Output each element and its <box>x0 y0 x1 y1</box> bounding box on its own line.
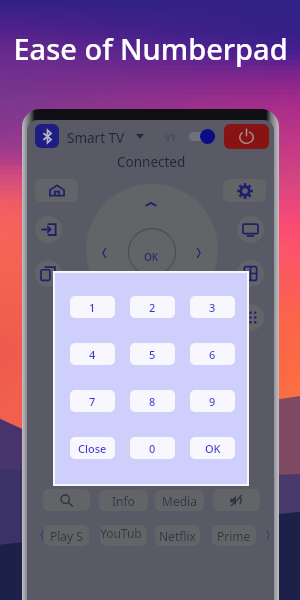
button[interactable]: 3 <box>190 296 235 318</box>
staticText: 6 <box>209 347 216 362</box>
button[interactable]: OK <box>135 240 168 273</box>
button[interactable]: 2 <box>130 296 175 318</box>
button[interactable]: Mute <box>213 489 260 511</box>
button[interactable]: Bluetooth <box>35 124 59 148</box>
button[interactable]: Prime <box>212 525 256 546</box>
button[interactable]: Keypad <box>237 304 264 331</box>
button[interactable]: 5 <box>130 343 175 365</box>
staticText: 5 <box>149 347 156 362</box>
button[interactable]: 1 <box>70 296 115 318</box>
button[interactable]: Source <box>35 216 62 243</box>
button[interactable]: Search <box>43 489 90 511</box>
staticText: Info <box>112 493 135 509</box>
staticText: Smart TV <box>67 129 125 147</box>
staticText: 2 <box>149 300 156 315</box>
staticText: 1 <box>89 300 96 315</box>
button[interactable]: Recents <box>35 260 62 287</box>
button[interactable]: Home <box>35 179 78 202</box>
button[interactable]: 7 <box>70 390 115 412</box>
button[interactable]: Power <box>224 124 269 149</box>
staticText: Media <box>162 493 197 509</box>
staticText: 4 <box>89 347 96 362</box>
staticText: OK <box>144 250 159 264</box>
button[interactable]: YouTube <box>100 525 147 546</box>
button[interactable]: Media <box>155 490 204 511</box>
button[interactable]: 9 <box>190 390 235 412</box>
staticText: Close <box>78 441 107 456</box>
button[interactable]: 8 <box>130 390 175 412</box>
staticText: 8 <box>149 394 156 409</box>
button[interactable]: Settings <box>223 179 266 202</box>
button[interactable]: 0 <box>130 437 175 459</box>
staticText: 9 <box>209 394 216 409</box>
button[interactable]: OK <box>190 437 235 459</box>
staticText: OK <box>205 441 221 456</box>
button[interactable]: 6 <box>190 343 235 365</box>
button[interactable]: Play S <box>44 525 89 546</box>
button[interactable]: TV <box>237 216 264 243</box>
staticText: 3 <box>209 300 216 315</box>
staticText: Play S <box>50 528 83 544</box>
staticText: Connected <box>117 153 186 171</box>
button[interactable]: Connect toggle <box>189 132 211 141</box>
staticText: Netflix <box>159 528 196 544</box>
staticText: Prime <box>217 528 251 544</box>
staticText: YouTube <box>100 525 147 546</box>
button[interactable]: Close <box>70 437 115 459</box>
staticText: V1 <box>165 131 177 144</box>
staticText: Ease of Numberpad <box>13 29 288 68</box>
button[interactable]: 4 <box>70 343 115 365</box>
staticText: 0 <box>149 441 156 456</box>
button[interactable]: Guide <box>237 260 264 287</box>
staticText: 7 <box>89 394 96 409</box>
button[interactable]: Netflix <box>155 525 200 546</box>
button[interactable]: Info <box>99 490 148 511</box>
